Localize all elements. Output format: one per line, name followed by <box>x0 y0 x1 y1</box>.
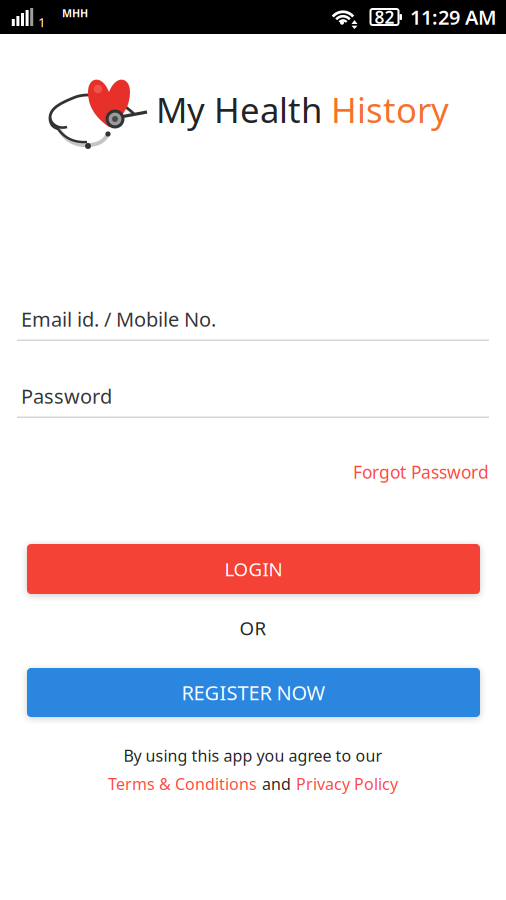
button[interactable]: Privacy Policy <box>296 773 398 794</box>
staticText: MHH <box>62 6 88 20</box>
staticText: Forgot Password <box>353 460 489 483</box>
staticText: 1 <box>38 13 46 31</box>
staticText: 82 <box>374 5 394 28</box>
staticText: By using this app you agree to our <box>123 745 382 766</box>
staticText: 11:29 AM <box>410 4 497 30</box>
staticText: My Health <box>156 86 331 132</box>
staticText: REGISTER NOW <box>181 679 325 706</box>
button[interactable]: REGISTER NOW <box>27 668 480 717</box>
button[interactable]: LOGIN <box>27 544 480 594</box>
staticText: Privacy Policy <box>296 773 398 794</box>
staticText: History <box>331 86 449 132</box>
staticText: LOGIN <box>224 557 282 581</box>
staticText: Password <box>21 383 112 409</box>
button[interactable]: Forgot Password <box>353 461 489 483</box>
staticText: and <box>262 773 291 794</box>
staticText: Email id. / Mobile No. <box>21 306 216 332</box>
staticText: Terms & Conditions <box>108 773 257 794</box>
staticText: OR <box>239 616 266 640</box>
button[interactable]: Password <box>17 385 489 418</box>
button[interactable]: Terms & Conditions <box>108 773 257 794</box>
button[interactable]: Email id. / Mobile No. <box>17 308 489 341</box>
